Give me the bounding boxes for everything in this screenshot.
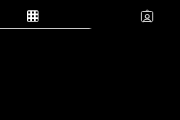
button[interactable]: Apps: [23, 6, 45, 28]
button[interactable]: Account: [136, 5, 158, 27]
